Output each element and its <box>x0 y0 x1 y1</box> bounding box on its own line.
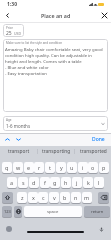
staticText: - Blue and white color <box>5 64 49 70</box>
staticText: e <box>27 164 31 171</box>
button[interactable]: k <box>83 177 93 188</box>
staticText: v <box>53 194 56 201</box>
staticText: USD <box>14 31 22 36</box>
staticText: n <box>74 194 78 201</box>
button[interactable]: h <box>61 177 71 188</box>
staticText: Make sure to list the style and conditio… <box>6 41 63 45</box>
button[interactable]: Space <box>24 206 82 217</box>
button[interactable]: c <box>38 192 48 203</box>
staticText: o <box>91 164 95 171</box>
staticText: transporting <box>42 148 71 155</box>
staticText: transport <box>8 148 30 155</box>
staticText: Age <box>6 118 12 122</box>
staticText: l <box>98 179 100 186</box>
button[interactable]: j <box>72 177 82 188</box>
staticText: u <box>70 164 74 171</box>
staticText: Place an ad <box>41 12 71 19</box>
staticText: b <box>63 194 67 201</box>
button[interactable]: i <box>78 162 88 173</box>
button[interactable]: Done <box>86 133 111 146</box>
staticText: condition high quality. Can be adjustabl… <box>5 52 93 58</box>
button[interactable]: Close <box>97 9 111 22</box>
staticText: t <box>49 164 51 171</box>
button[interactable]: q <box>2 162 12 173</box>
button[interactable]: Back <box>0 9 14 22</box>
staticText: d <box>32 179 36 186</box>
button[interactable]: Price <box>3 24 24 37</box>
button[interactable]: y <box>56 162 66 173</box>
staticText: r <box>38 164 41 171</box>
button[interactable]: Dictate <box>97 225 105 233</box>
button[interactable]: Shift <box>2 192 13 203</box>
staticText: k <box>87 179 90 186</box>
staticText: 25 <box>6 30 12 37</box>
button[interactable]: transport <box>0 146 37 157</box>
button[interactable]: transporting <box>38 146 74 157</box>
staticText: j <box>76 179 78 186</box>
staticText: - Easy transportation <box>5 70 47 76</box>
button[interactable]: Make sure to list the style and conditio… <box>3 39 108 112</box>
button[interactable]: g <box>50 177 60 188</box>
button[interactable]: f <box>40 177 50 188</box>
button[interactable]: transported <box>75 146 111 157</box>
button[interactable]: m <box>82 192 92 203</box>
staticText: x <box>32 194 35 201</box>
button[interactable]: l <box>94 177 104 188</box>
button[interactable]: s <box>18 177 28 188</box>
button[interactable]: d <box>29 177 39 188</box>
staticText: 1-6 months <box>6 123 31 129</box>
staticText: q <box>5 164 9 171</box>
staticText: p <box>102 164 106 171</box>
staticText: g <box>53 179 57 186</box>
staticText: w <box>16 164 21 171</box>
staticText: h <box>64 179 68 186</box>
button[interactable]: Emoji <box>5 225 13 233</box>
staticText: Amazing Baby chair comfortable seat, ver… <box>5 46 103 52</box>
button[interactable]: r <box>34 162 44 173</box>
staticText: z <box>21 194 24 201</box>
staticText: c <box>42 194 45 201</box>
staticText: 1:30 <box>7 1 17 8</box>
staticText: space <box>47 209 59 215</box>
staticText: i <box>82 164 84 171</box>
button[interactable]: w <box>13 162 23 173</box>
button[interactable]: b <box>60 192 70 203</box>
button[interactable]: p <box>99 162 109 173</box>
button[interactable]: u <box>67 162 77 173</box>
staticText: Done <box>92 136 105 143</box>
button[interactable]: o <box>88 162 98 173</box>
staticText: s <box>22 179 25 186</box>
staticText: f <box>44 179 46 186</box>
button[interactable]: e <box>24 162 34 173</box>
button[interactable]: Numbers <box>2 206 12 217</box>
button[interactable]: x <box>28 192 38 203</box>
button[interactable]: Return <box>84 206 110 217</box>
staticText: return <box>91 209 104 215</box>
button[interactable]: v <box>49 192 59 203</box>
staticText: height and length. Comes with a table <box>5 58 82 64</box>
staticText: Price <box>6 26 13 30</box>
button[interactable]: t <box>45 162 55 173</box>
button[interactable]: a <box>7 177 17 188</box>
staticText: y <box>60 164 63 171</box>
staticText: 123 <box>4 209 11 214</box>
button[interactable]: Backspace <box>98 192 109 203</box>
staticText: transported <box>80 148 107 155</box>
button[interactable]: Previous field <box>2 134 13 145</box>
button[interactable]: Next field <box>13 134 24 145</box>
button[interactable]: Switch keyboard <box>14 206 22 217</box>
button[interactable]: z <box>17 192 27 203</box>
button[interactable]: n <box>71 192 81 203</box>
button[interactable]: Age <box>3 116 108 131</box>
staticText: m <box>84 194 90 201</box>
staticText: a <box>10 179 14 186</box>
